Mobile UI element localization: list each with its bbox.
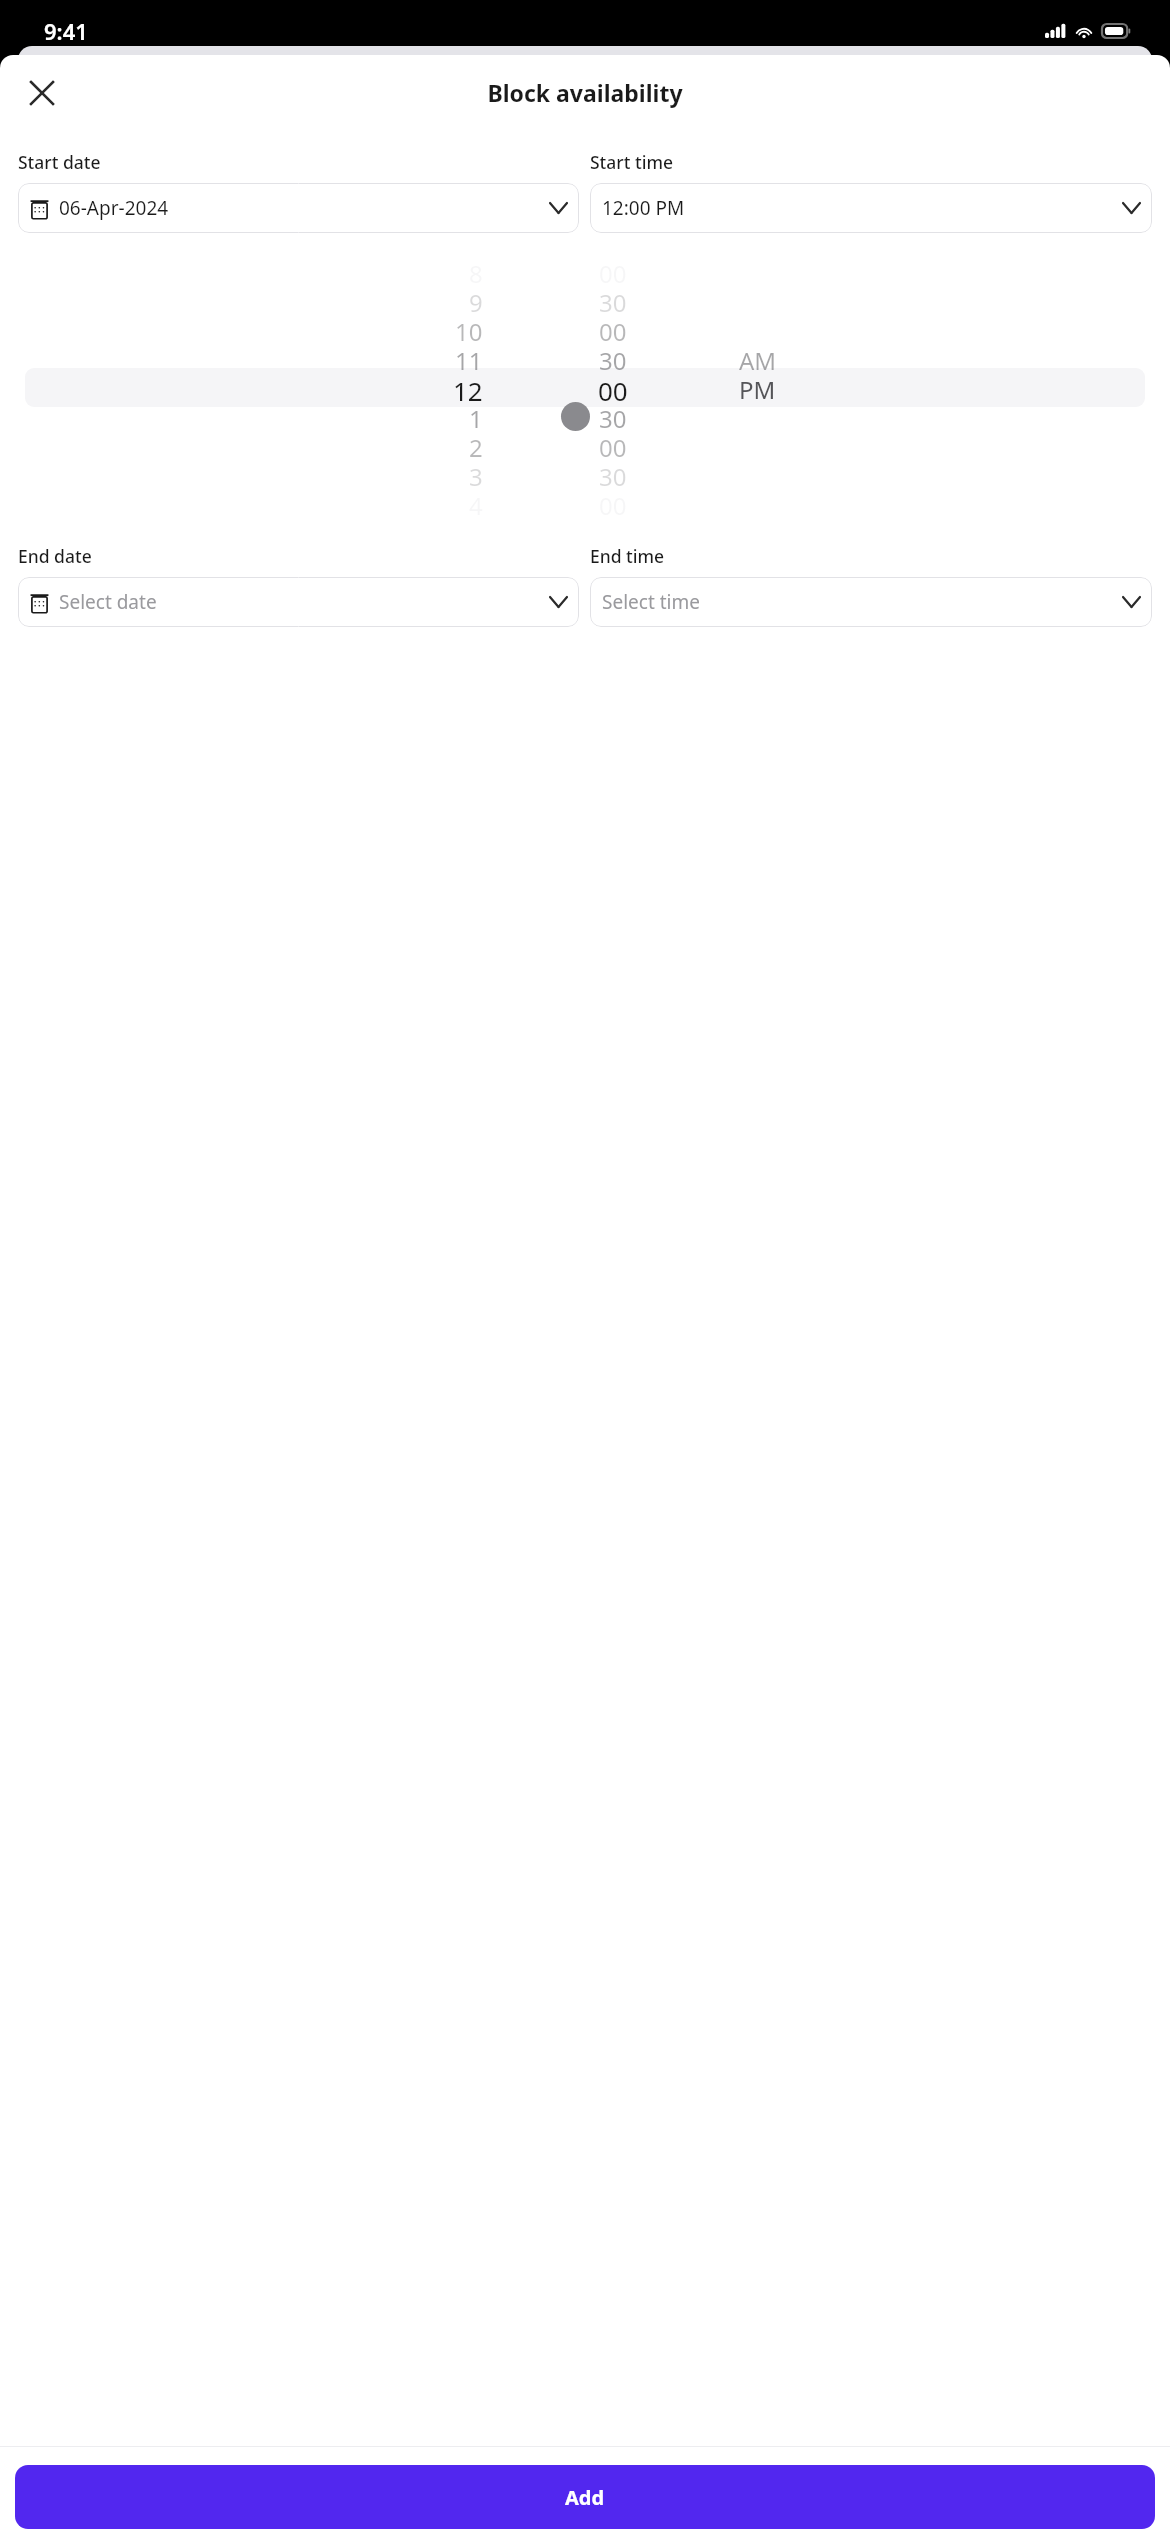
staticText: End date [18, 544, 92, 568]
staticText: PM [739, 373, 776, 402]
staticText: Select date [59, 589, 550, 615]
staticText: 00 [599, 431, 627, 460]
staticText: Add [565, 2484, 605, 2511]
staticText: 8 [469, 257, 483, 286]
staticText: Start time [590, 150, 674, 174]
button[interactable]: Select date [18, 577, 579, 627]
button[interactable]: 8 [0, 257, 1170, 518]
button[interactable]: 06-Apr-2024 [18, 183, 579, 233]
staticText: AM [739, 344, 777, 373]
staticText: 12 [453, 373, 483, 402]
staticText: 00 [598, 373, 628, 402]
staticText: 00 [599, 315, 627, 344]
staticText: Start date [18, 150, 101, 174]
button[interactable]: Add [15, 2465, 1155, 2529]
staticText: 30 [599, 460, 627, 489]
staticText: 1 [469, 402, 483, 431]
staticText: 30 [599, 286, 627, 315]
button[interactable]: 12:00 PM [590, 183, 1152, 233]
staticText: 9:41 [44, 16, 88, 46]
staticText: 06-Apr-2024 [59, 195, 550, 221]
staticText: 10 [455, 315, 483, 344]
staticText: Select time [602, 589, 1123, 615]
staticText: 4 [469, 489, 483, 518]
staticText: 9 [469, 286, 483, 315]
staticText: 00 [599, 489, 627, 518]
button[interactable]: Add [0, 2447, 1170, 2532]
staticText: 30 [599, 344, 627, 373]
staticText: End time [590, 544, 665, 568]
staticText: 11 [455, 344, 483, 373]
staticText: 30 [599, 402, 627, 431]
staticText: 3 [469, 460, 483, 489]
staticText: Block availability [487, 77, 683, 108]
button[interactable]: Close [18, 69, 66, 117]
staticText: 12:00 PM [602, 195, 1123, 221]
staticText: 00 [599, 257, 627, 286]
button[interactable]: Select time [590, 577, 1152, 627]
staticText: 2 [469, 431, 483, 460]
